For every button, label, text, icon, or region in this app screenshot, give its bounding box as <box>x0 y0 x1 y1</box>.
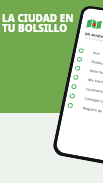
staticText: Registro de reportes <box>82 105 103 116</box>
button[interactable]: Reforma <box>71 62 103 84</box>
staticText: Residuos <box>91 59 103 66</box>
button[interactable]: Consejos ver <box>66 90 103 112</box>
staticText: Reforma <box>89 68 103 75</box>
button[interactable]: Aire <box>75 45 103 66</box>
staticText: Consejos ver <box>84 96 103 104</box>
button[interactable]: Funerarios <box>68 81 103 103</box>
staticText: Mi Ambiente <box>85 31 103 40</box>
staticText: Conoce el estado del ambiente <box>84 36 103 45</box>
staticText: LA CIUDAD EN TU BOLSILLO <box>2 11 74 35</box>
staticText: Aire <box>93 50 100 56</box>
button[interactable]: Registro de reportes <box>64 99 103 122</box>
button[interactable]: Mis trámites <box>70 71 103 93</box>
button[interactable]: Residuos <box>73 54 103 74</box>
staticText: Mis trámites <box>88 77 103 85</box>
staticText: Funerarios <box>86 86 103 94</box>
